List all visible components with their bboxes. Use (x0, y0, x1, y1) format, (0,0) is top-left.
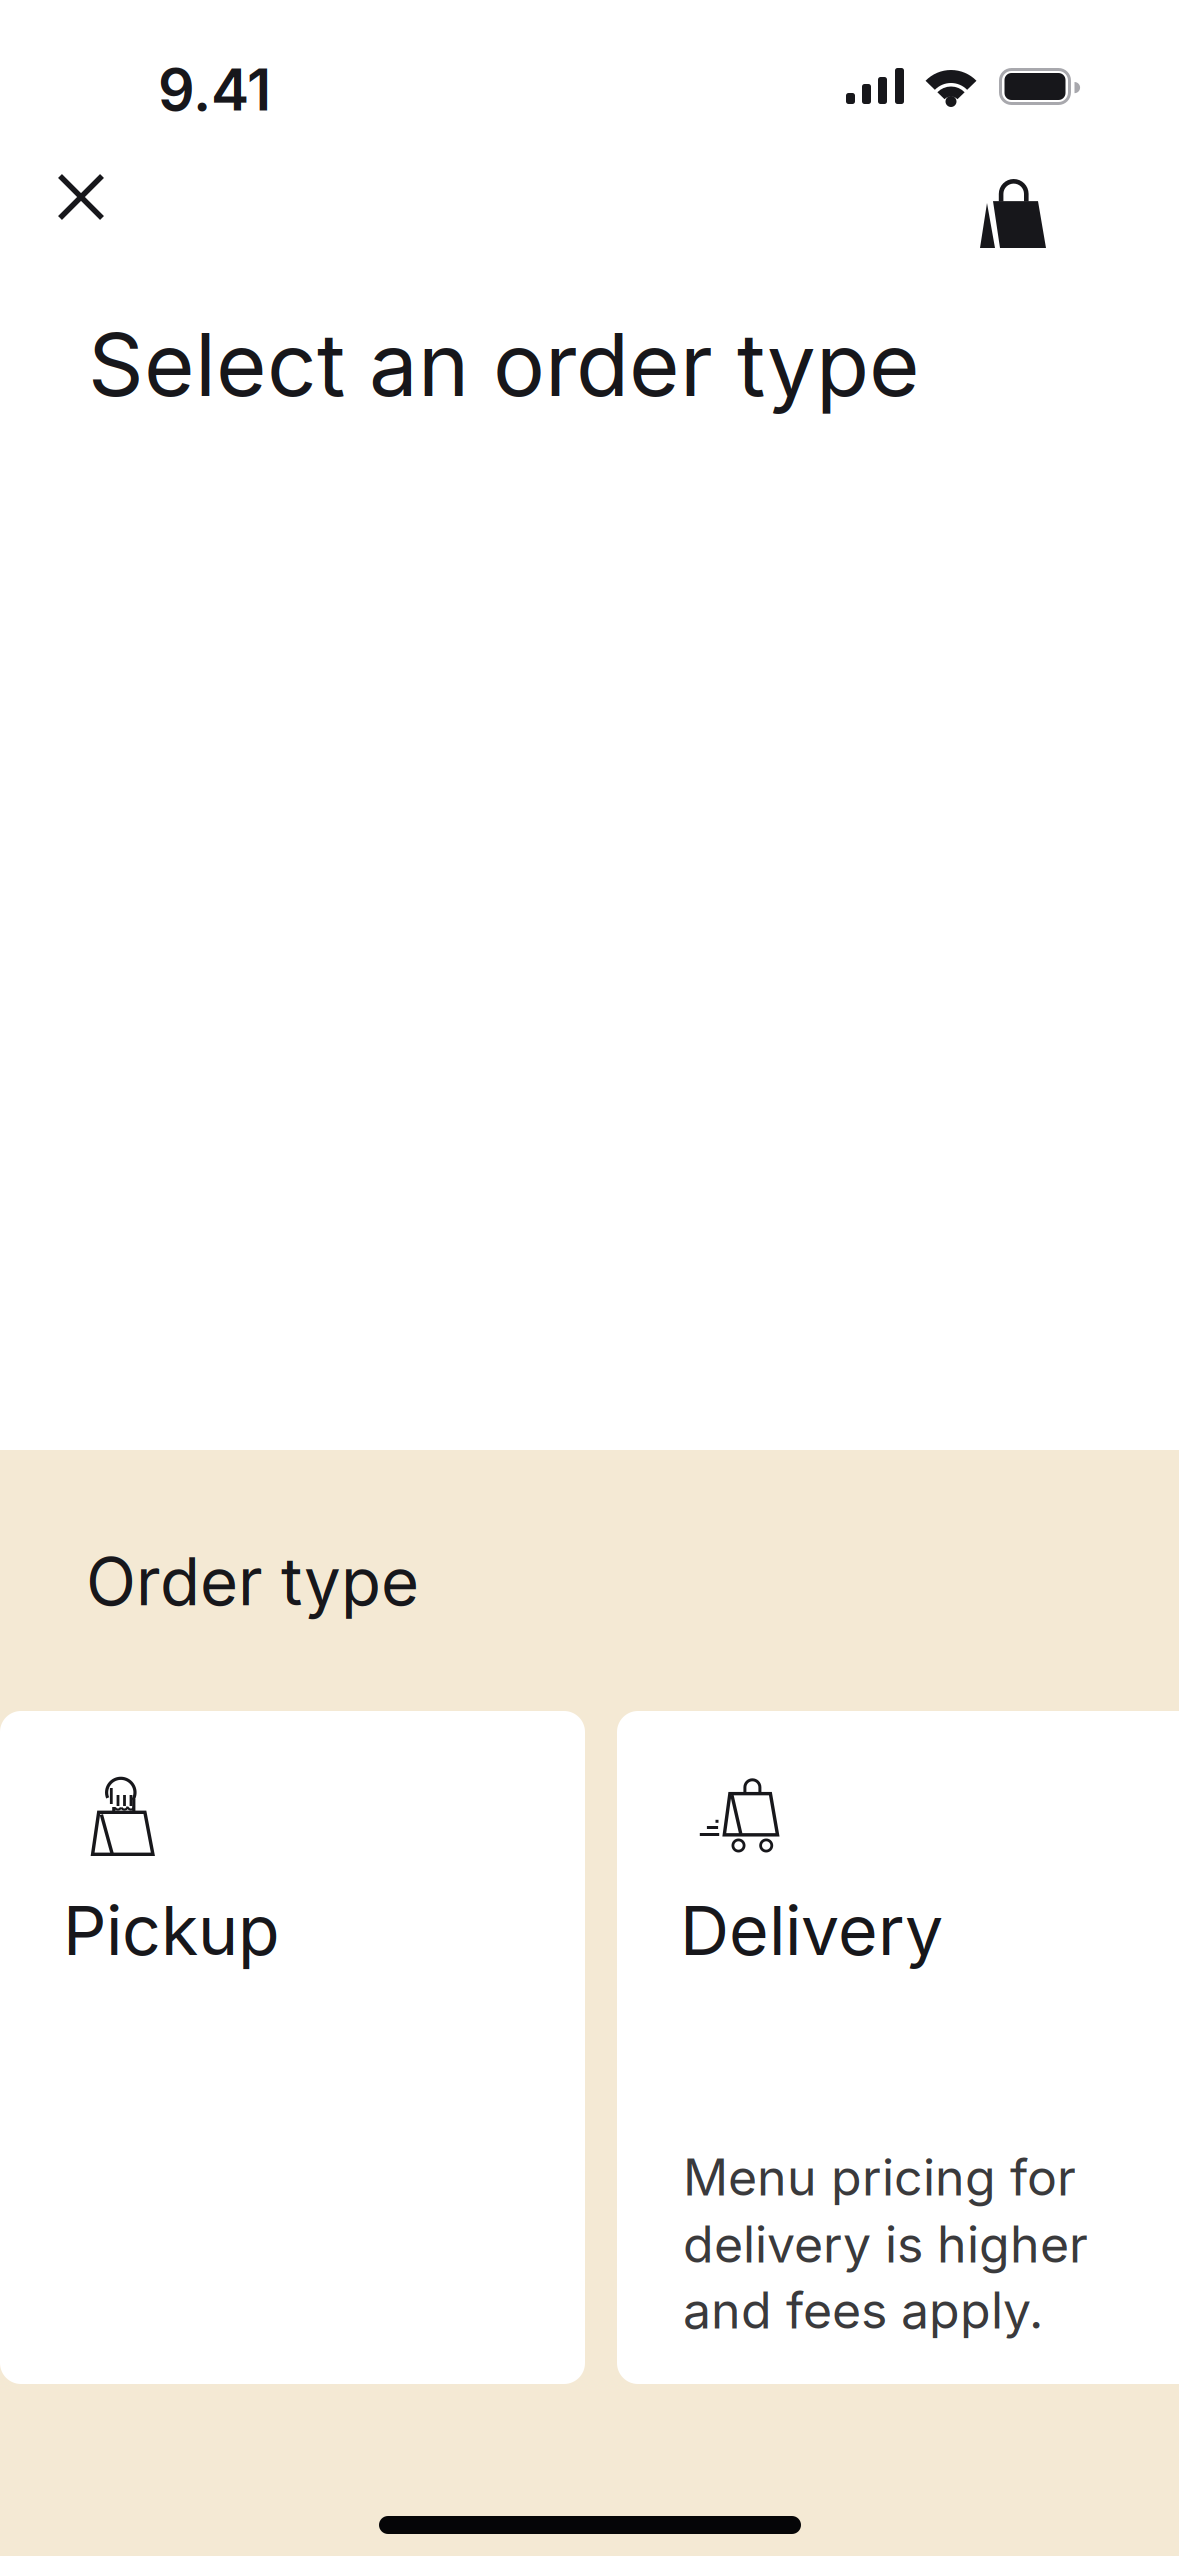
button[interactable]: Pickup (0, 1711, 585, 2384)
staticText: Pickup (63, 1889, 280, 1971)
staticText: Order type (86, 1542, 419, 1621)
button[interactable]: Bag (958, 159, 1068, 269)
button[interactable]: Delivery (617, 1711, 1179, 2384)
staticText: Select an order type (88, 312, 920, 417)
staticText: and fees apply. (683, 2280, 1043, 2340)
staticText: Delivery (680, 1889, 943, 1971)
button[interactable]: Close (36, 152, 126, 242)
staticText: 9.41 (158, 55, 271, 124)
staticText: delivery is higher (683, 2214, 1088, 2274)
staticText: Menu pricing for (683, 2147, 1076, 2207)
